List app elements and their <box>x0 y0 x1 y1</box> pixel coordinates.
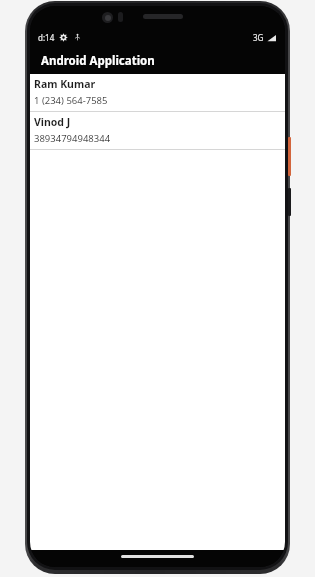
other: Settings <box>59 33 68 42</box>
staticText: d:14 <box>38 32 55 43</box>
staticText: 1 (234) 564-7585 <box>34 94 108 107</box>
other: Signal strength <box>267 34 276 42</box>
other: USB debugging <box>74 34 81 41</box>
staticText: Ram Kumar <box>34 77 96 91</box>
staticText: Android Application <box>41 53 155 69</box>
button[interactable]: Ram Kumar <box>30 74 285 111</box>
button[interactable]: Vinod J <box>30 112 285 149</box>
staticText: 38934794948344 <box>34 132 111 145</box>
staticText: 3G <box>253 32 264 43</box>
staticText: Vinod J <box>34 115 71 129</box>
